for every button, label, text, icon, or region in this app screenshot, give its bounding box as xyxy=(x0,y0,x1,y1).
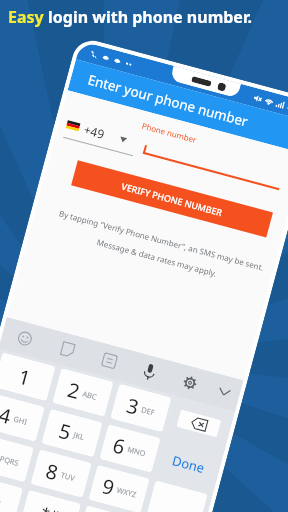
staticText: Phone number xyxy=(141,120,199,145)
other: Hide keyboard xyxy=(218,388,230,396)
staticText: 8 xyxy=(43,457,62,486)
staticText: 47% xyxy=(287,101,288,116)
button[interactable] xyxy=(77,505,139,512)
button[interactable]: 1 xyxy=(0,352,56,401)
button[interactable]: 4 xyxy=(0,393,45,442)
staticText: ABC xyxy=(81,389,98,402)
staticText: MNO xyxy=(126,444,147,459)
staticText: 1 xyxy=(15,363,34,392)
staticText: 9 xyxy=(99,472,118,501)
button[interactable]: 0 xyxy=(0,474,23,512)
staticText: 6 xyxy=(110,432,129,461)
staticText: 2 xyxy=(65,376,83,405)
staticText: Enter your phone number xyxy=(86,70,250,130)
button[interactable]: 6 xyxy=(99,424,161,473)
staticText: 4 xyxy=(0,401,15,430)
button[interactable]: *# xyxy=(20,490,81,512)
staticText: VERIFY PHONE NUMBER xyxy=(120,180,224,218)
staticText: Easy xyxy=(8,6,48,28)
button[interactable]: 2 xyxy=(52,368,114,417)
staticText: PQRS xyxy=(0,453,21,468)
staticText: DEF xyxy=(140,404,156,418)
button[interactable]: Done xyxy=(157,440,219,488)
button[interactable]: 9 xyxy=(88,465,150,512)
staticText: 7 xyxy=(0,441,1,470)
button[interactable] xyxy=(146,480,208,512)
button[interactable]: 5 xyxy=(41,409,103,457)
staticText: 5 xyxy=(56,417,74,446)
staticText: JKL xyxy=(72,430,86,442)
staticText: TUV xyxy=(60,470,77,483)
other: Voice input xyxy=(142,363,157,381)
staticText: 3 xyxy=(124,392,142,421)
staticText: GHI xyxy=(12,414,29,427)
staticText: Done xyxy=(170,451,207,477)
button[interactable]: VERIFY PHONE NUMBER xyxy=(71,160,273,238)
button[interactable]: 7 xyxy=(0,433,34,482)
staticText: + xyxy=(0,496,3,507)
staticText: By tapping “Verify Phone Number”, an SMS… xyxy=(56,207,267,273)
staticText: Message & data rates may apply. xyxy=(52,224,262,291)
staticText: login with phone number. xyxy=(48,6,252,28)
other: Backspace xyxy=(190,417,208,431)
staticText: WXYZ xyxy=(116,485,137,499)
staticText: *# xyxy=(39,502,62,512)
button[interactable]: 3 xyxy=(110,384,172,432)
staticText: +49 xyxy=(82,121,106,142)
button[interactable]: Backspace xyxy=(168,399,230,448)
button[interactable]: 8 xyxy=(30,449,92,498)
other: Keyboard settings xyxy=(181,374,199,391)
